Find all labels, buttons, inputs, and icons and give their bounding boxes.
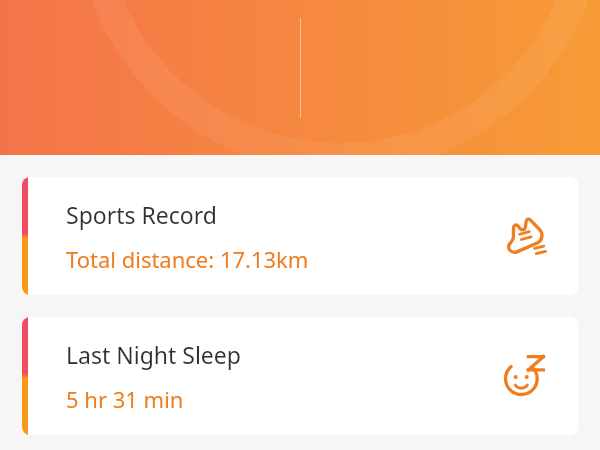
staticText: Total distance: 17.13km <box>66 244 309 274</box>
staticText: Sports Record <box>66 199 217 230</box>
button[interactable]: Sports Record <box>22 177 578 295</box>
staticText: 5 hr 31 min <box>66 384 184 414</box>
staticText: Last Night Sleep <box>66 339 241 370</box>
other: Sleep record <box>500 352 548 400</box>
button[interactable]: Last Night Sleep <box>22 317 578 435</box>
other: Sports record <box>500 212 548 260</box>
